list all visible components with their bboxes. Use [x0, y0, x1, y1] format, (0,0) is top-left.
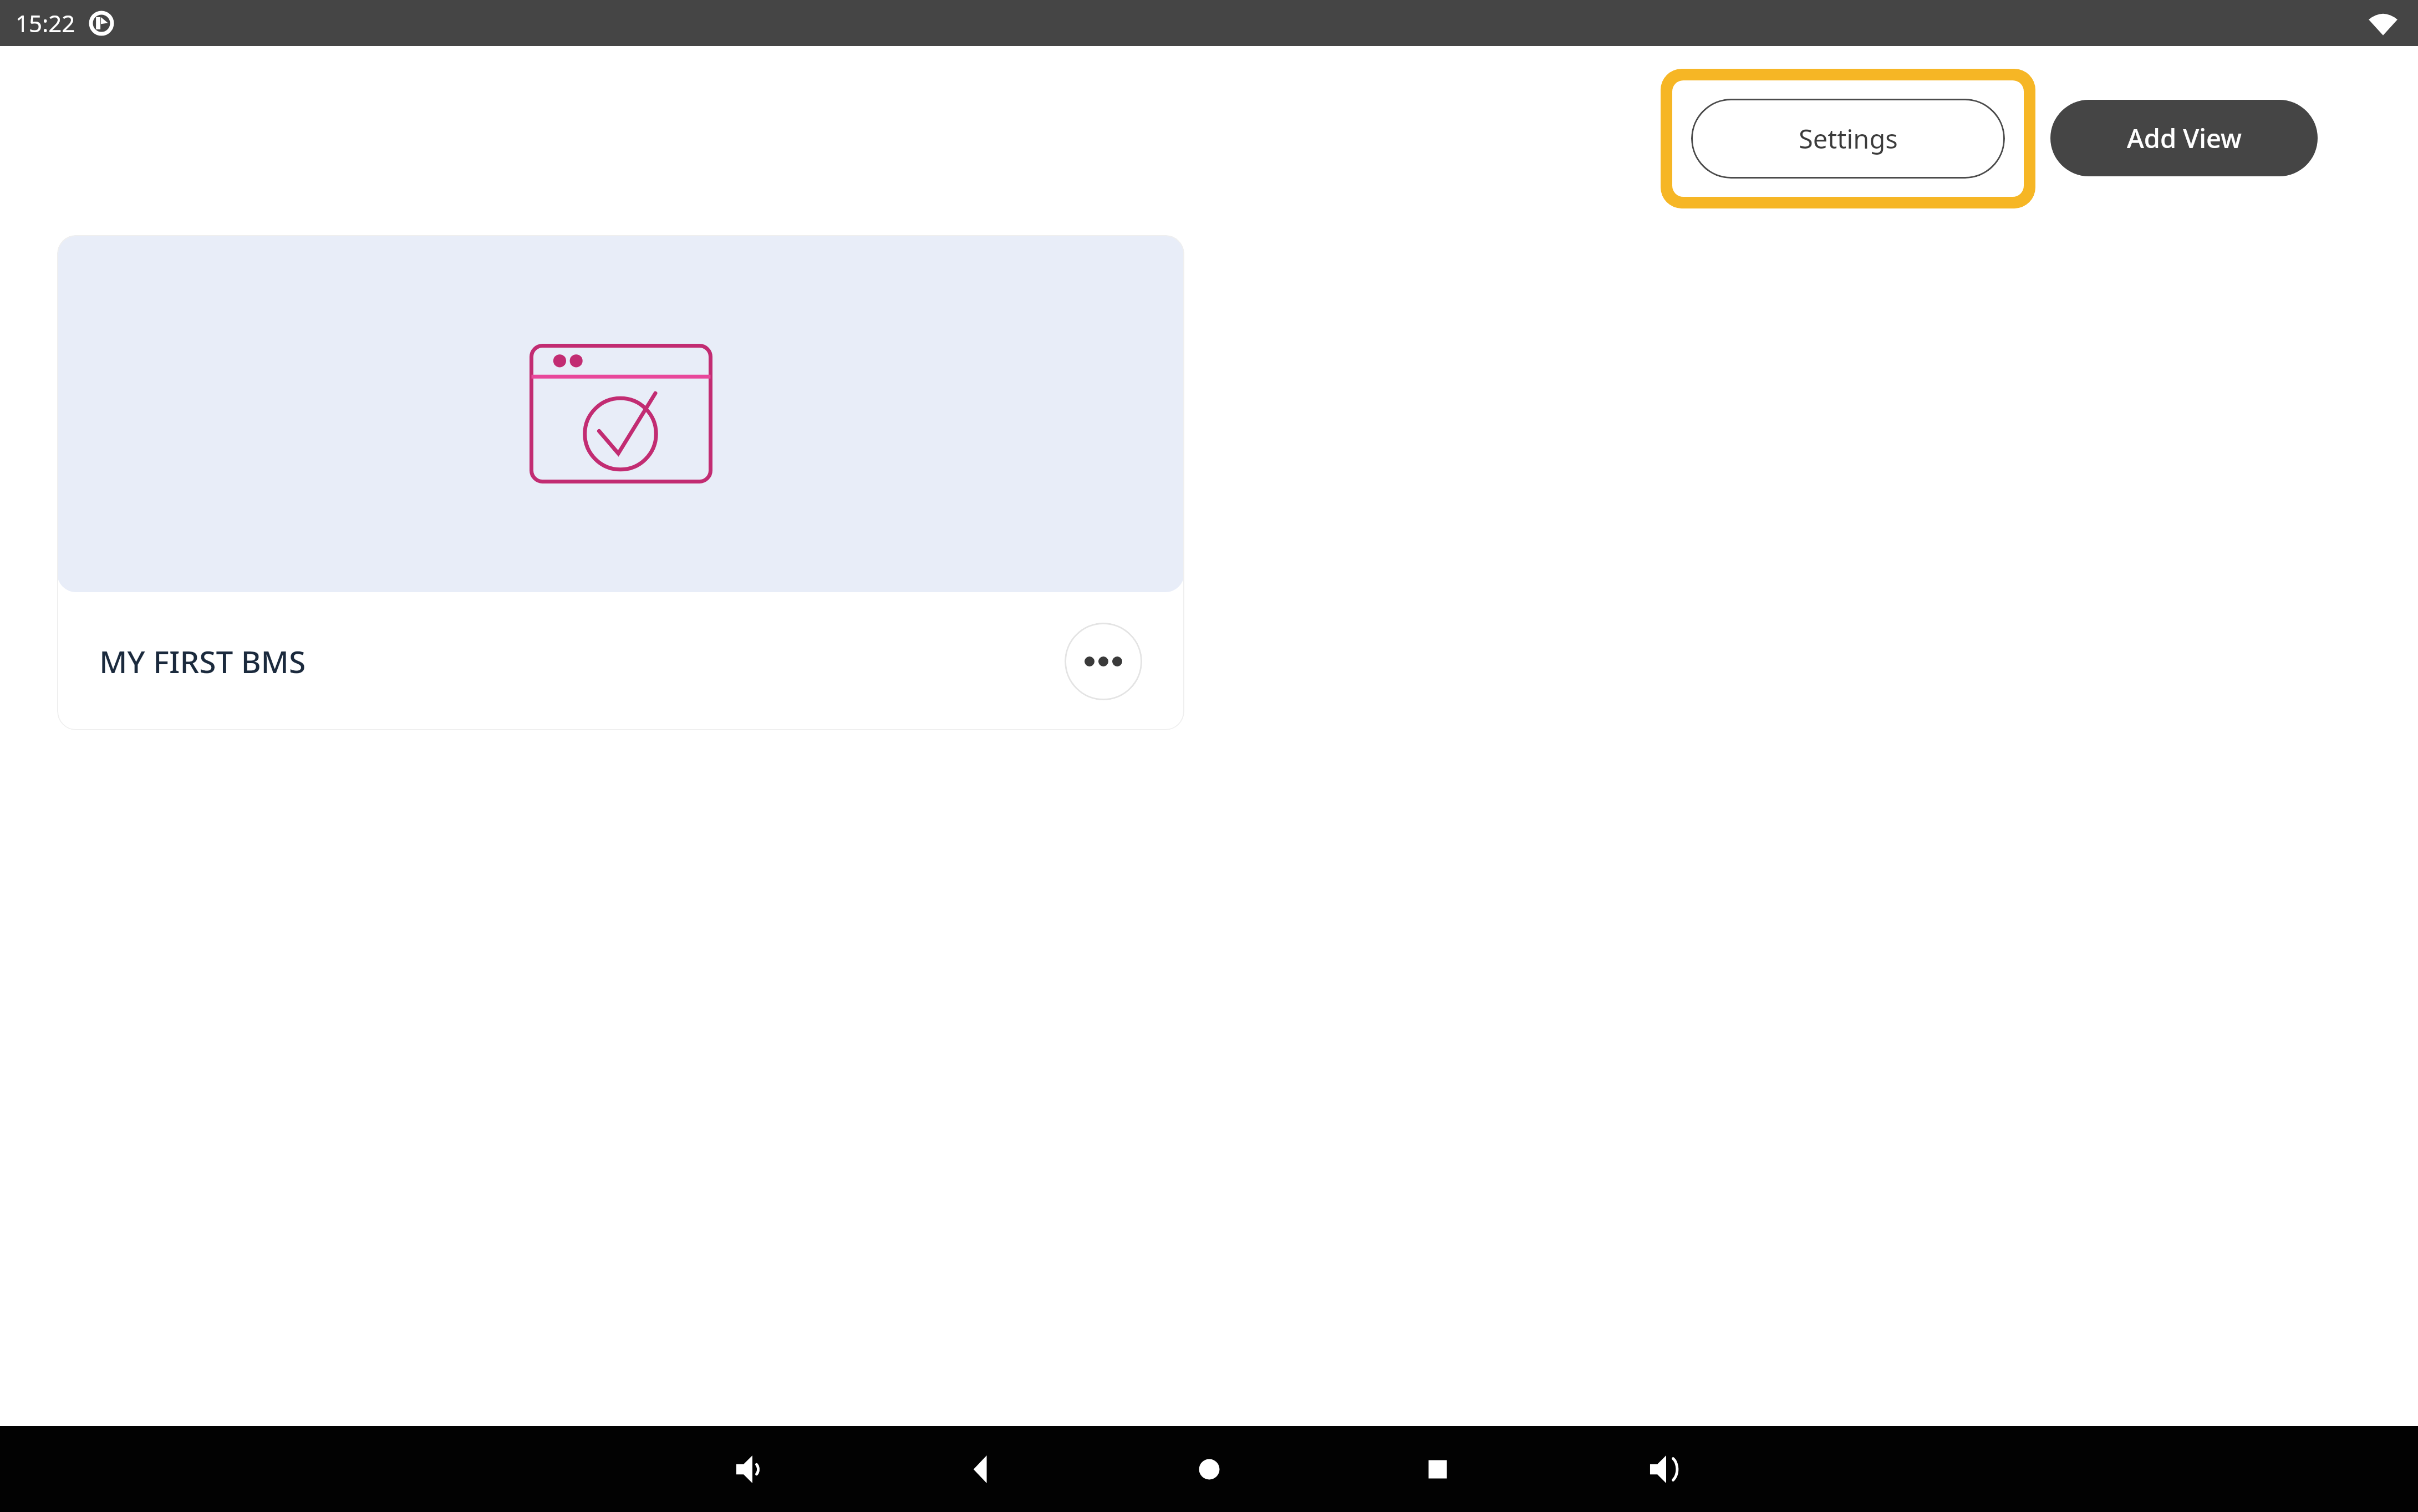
button[interactable]: Settings: [1691, 99, 2005, 179]
button[interactable]: More options: [1065, 623, 1142, 700]
button[interactable]: Add View: [2050, 100, 2318, 176]
button[interactable]: Recent apps: [1399, 1430, 1477, 1508]
button[interactable]: Back: [942, 1430, 1020, 1508]
staticText: Add View: [2127, 120, 2242, 156]
button[interactable]: Volume up: [1627, 1430, 1705, 1508]
button[interactable]: MY FIRST BMS: [57, 235, 1184, 730]
staticText: Settings: [1799, 121, 1898, 156]
staticText: MY FIRST BMS: [99, 640, 306, 682]
staticText: 15:22: [16, 7, 75, 39]
button[interactable]: Home: [1170, 1430, 1248, 1508]
button[interactable]: Volume down: [714, 1430, 791, 1508]
